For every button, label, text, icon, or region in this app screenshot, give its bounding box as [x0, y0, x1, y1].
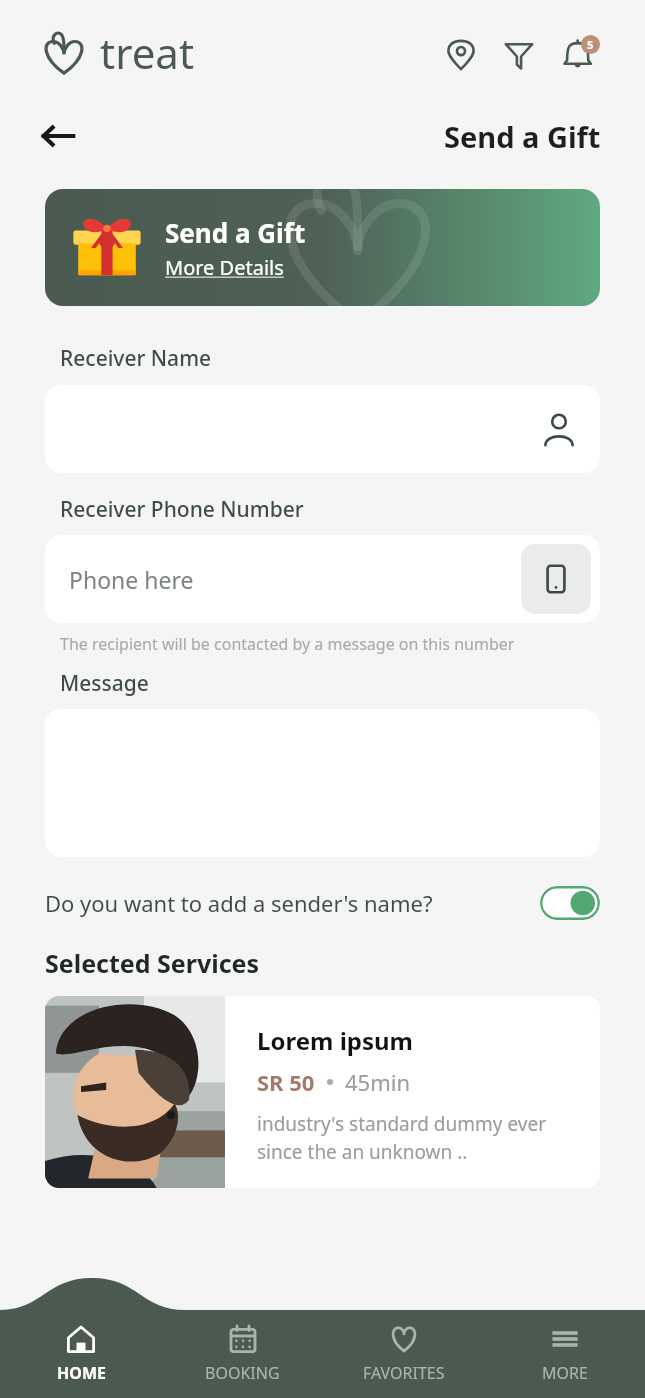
staticText: Send a Gift [165, 215, 306, 250]
staticText: Receiver Name [60, 344, 212, 373]
button[interactable]: Send a Gift [45, 189, 600, 306]
button[interactable]: Notifications [557, 33, 601, 77]
staticText: MORE [542, 1362, 588, 1384]
button[interactable]: BOOKING [162, 1310, 323, 1398]
staticText: HOME [57, 1362, 106, 1384]
other: Choose contact [542, 412, 576, 446]
button[interactable]: Location [441, 35, 481, 75]
staticText: Send a Gift [444, 117, 601, 156]
staticText: The recipient will be contacted by a mes… [60, 633, 515, 655]
button[interactable]: HOME [0, 1310, 162, 1398]
button[interactable]: Choose contact [45, 385, 600, 473]
staticText: Receiver Phone Number [60, 495, 304, 524]
button[interactable]: Add sender name toggle [540, 886, 600, 920]
staticText: Message [60, 669, 149, 698]
staticText: SR 50 [257, 1067, 315, 1097]
staticText: BOOKING [205, 1362, 280, 1384]
staticText: 45min [345, 1067, 411, 1097]
staticText: industry's standard dummy ever since the… [257, 1111, 586, 1165]
staticText: FAVORITES [363, 1362, 445, 1384]
staticText: Lorem ipsum [257, 1024, 414, 1057]
button[interactable]: Phone here [45, 535, 600, 623]
button[interactable]: Lorem ipsum [45, 996, 600, 1188]
staticText: treat [100, 24, 195, 81]
button[interactable]: Phone [521, 544, 591, 614]
staticText: Do you want to add a sender's name? [45, 888, 433, 918]
button[interactable]: FAVORITES [323, 1310, 484, 1398]
staticText: 5 [587, 37, 594, 52]
staticText: Selected Services [45, 946, 260, 980]
button[interactable]: MORE [484, 1310, 645, 1398]
staticText: Phone here [69, 564, 194, 595]
button[interactable]: Back [32, 110, 84, 162]
button[interactable]: Filter [499, 35, 539, 75]
button[interactable]: More Details [165, 254, 284, 281]
